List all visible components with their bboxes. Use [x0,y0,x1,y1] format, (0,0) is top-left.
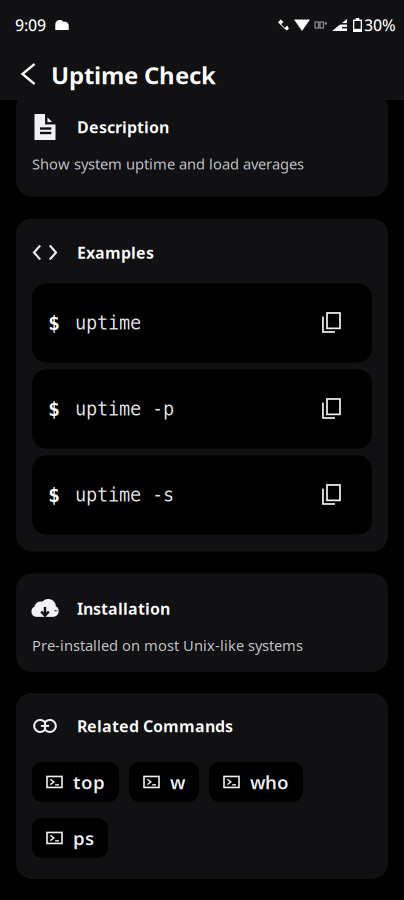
staticText: top [73,770,105,794]
button[interactable]: top [32,762,119,802]
button[interactable]: w [129,762,199,802]
staticText: $ [48,484,60,506]
staticText: uptime -p [75,398,174,420]
button[interactable]: $ [32,369,372,448]
button[interactable]: who [209,762,303,802]
staticText: Related Commands [77,715,233,736]
staticText: 30% [364,14,396,36]
staticText: Show system uptime and load averages [32,154,304,173]
staticText: w [170,770,185,794]
staticText: Examples [77,242,154,263]
staticText: $ [48,398,60,420]
button[interactable]: $ [32,283,372,362]
staticText: uptime [75,312,141,334]
staticText: $ [48,312,60,334]
staticText: who [250,770,289,794]
staticText: Uptime Check [51,59,216,91]
staticText: uptime -s [75,484,174,506]
staticText: ps [73,826,94,850]
staticText: Installation [77,598,170,619]
staticText: Pre-installed on most Unix-like systems [32,635,303,655]
button[interactable]: $ [32,455,372,534]
button[interactable]: Back [10,53,48,97]
staticText: 9:09 [15,14,46,36]
button[interactable]: ps [32,818,108,858]
staticText: Description [77,116,169,138]
